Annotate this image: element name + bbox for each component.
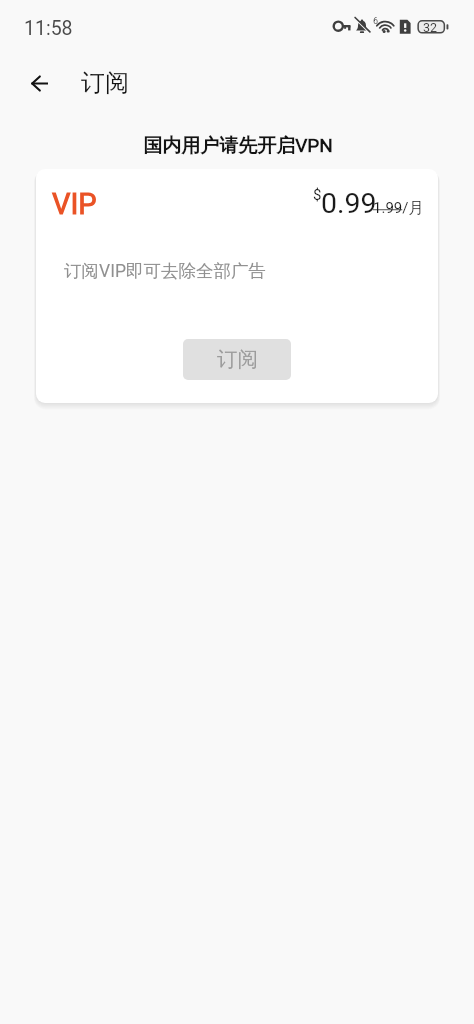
staticText: 订阅VIP即可去除全部广告 [64,260,266,282]
staticText: 订阅 [217,346,258,372]
staticText: 订阅 [81,68,129,98]
button[interactable]: Back [19,63,59,103]
staticText: 6 [373,16,379,27]
staticText: VIP [52,187,97,221]
button[interactable]: 订阅 [183,339,291,380]
staticText: 1.99/月 [373,199,424,218]
staticText: 0.99 [321,187,377,220]
staticText: 32 [423,20,438,35]
staticText: $ [313,186,322,204]
staticText: 11:58 [24,17,73,40]
staticText: 国内用户请先开启VPN [1,134,474,158]
